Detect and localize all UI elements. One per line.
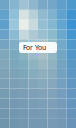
button[interactable]: For You	[19, 42, 57, 53]
staticText: For You	[23, 43, 46, 52]
